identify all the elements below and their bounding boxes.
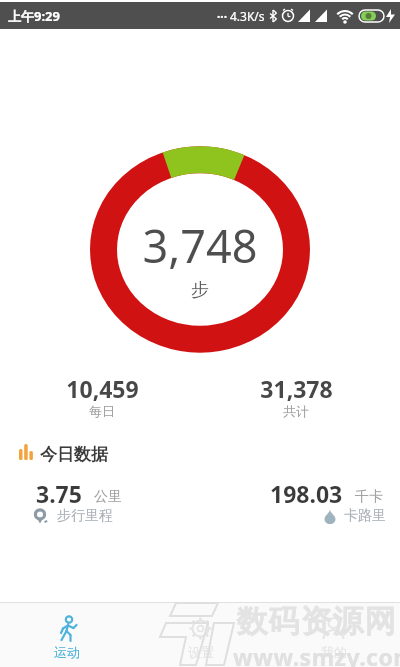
staticText: 公里	[94, 488, 122, 506]
staticText: 今日数据	[40, 444, 108, 465]
staticText: ···	[217, 8, 228, 24]
staticText: 步	[191, 279, 209, 302]
staticText: www.smzy.com	[233, 641, 400, 667]
staticText: 运动	[54, 644, 80, 660]
staticText: 卡路里	[344, 507, 386, 525]
staticText: 数码资源网	[236, 602, 396, 641]
button[interactable]: 设置	[134, 608, 267, 667]
staticText: 上午9:29	[8, 7, 60, 25]
staticText: 4.3K/s	[230, 8, 265, 24]
staticText: 3.75	[36, 478, 82, 509]
staticText: 共计	[283, 403, 309, 419]
staticText: 步行里程	[57, 507, 113, 525]
button[interactable]: 我的	[267, 608, 400, 667]
button[interactable]: 运动	[0, 608, 134, 667]
staticText: 设置	[188, 644, 214, 660]
staticText: 我的	[321, 644, 347, 660]
staticText: 31,378	[260, 373, 333, 404]
staticText: 每日	[89, 403, 115, 419]
staticText: 千卡	[355, 488, 383, 506]
staticText: 10,459	[66, 373, 139, 404]
staticText: 198.03	[270, 478, 343, 509]
staticText: 3,748	[142, 215, 258, 276]
